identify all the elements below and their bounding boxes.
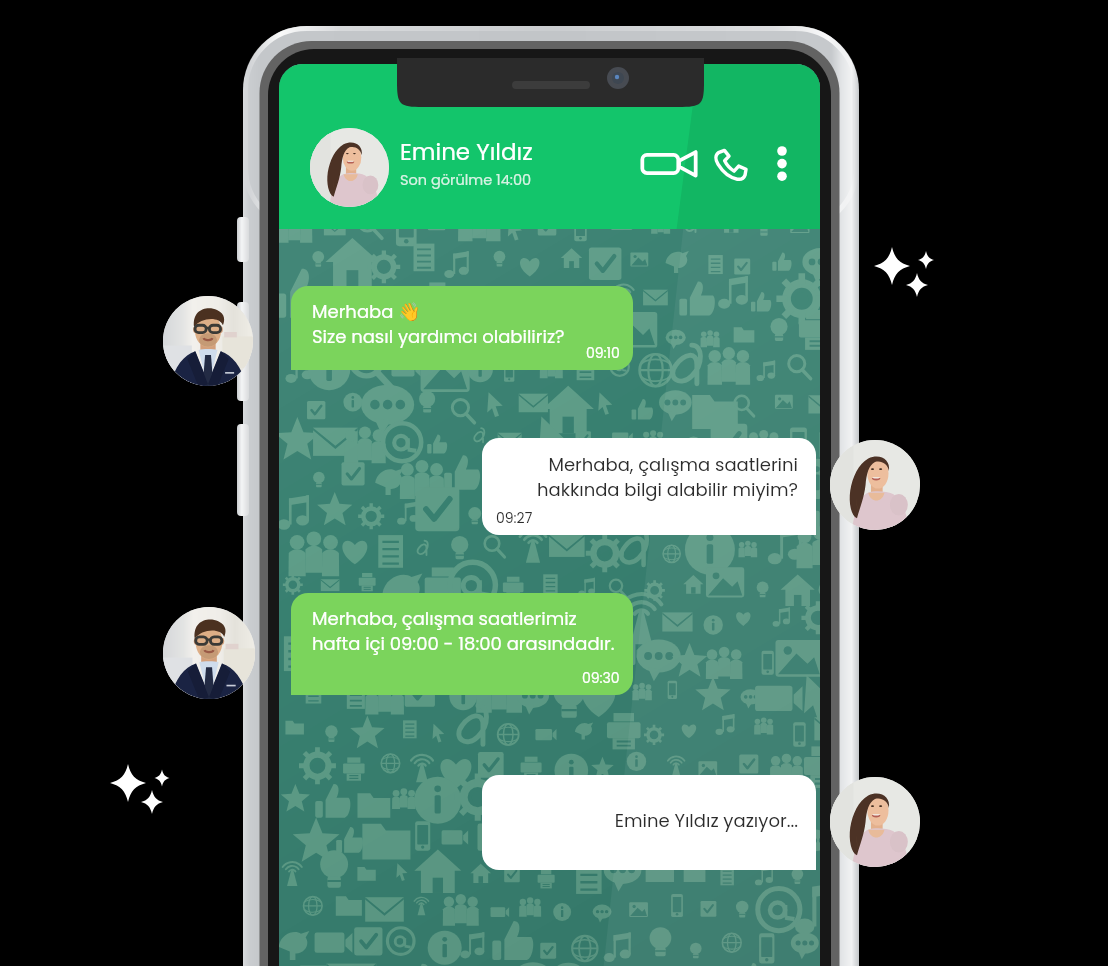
- button[interactable]: Voice call: [709, 141, 755, 187]
- staticText: Size nasıl yardımcı olabiliriz?: [312, 324, 565, 349]
- staticText: hafta içi 09:00 - 18:00 arasındadır.: [312, 631, 615, 656]
- staticText: Emine Yıldız: [400, 136, 533, 168]
- staticText: hakkında bilgi alabilir miyim?: [537, 477, 798, 502]
- staticText: Emine Yıldız yazıyor...: [614, 808, 798, 833]
- button[interactable]: Merhaba, çalışma saatlerimiz: [291, 593, 633, 695]
- staticText: Merhaba 👋: [312, 299, 421, 324]
- button[interactable]: Profile photo: [830, 440, 920, 530]
- staticText: Merhaba, çalışma saatlerini: [548, 452, 798, 477]
- button[interactable]: Contact photo: [310, 128, 389, 207]
- staticText: Son görülme 14:00: [400, 170, 532, 190]
- button[interactable]: Profile photo: [163, 296, 253, 386]
- button[interactable]: Merhaba 👋: [291, 286, 633, 370]
- button[interactable]: Merhaba, çalışma saatlerini: [482, 438, 816, 535]
- staticText: Merhaba, çalışma saatlerimiz: [312, 606, 577, 631]
- button[interactable]: More options: [768, 140, 796, 188]
- button[interactable]: Emine Yıldız yazıyor...: [482, 775, 816, 870]
- button[interactable]: Emine Yıldız: [400, 136, 620, 200]
- button[interactable]: Profile photo: [830, 777, 920, 867]
- staticText: 09:10: [586, 343, 620, 363]
- staticText: 09:27: [496, 508, 533, 528]
- staticText: 09:30: [582, 668, 620, 688]
- button[interactable]: Video call: [640, 143, 698, 185]
- button[interactable]: Profile photo: [163, 607, 255, 699]
